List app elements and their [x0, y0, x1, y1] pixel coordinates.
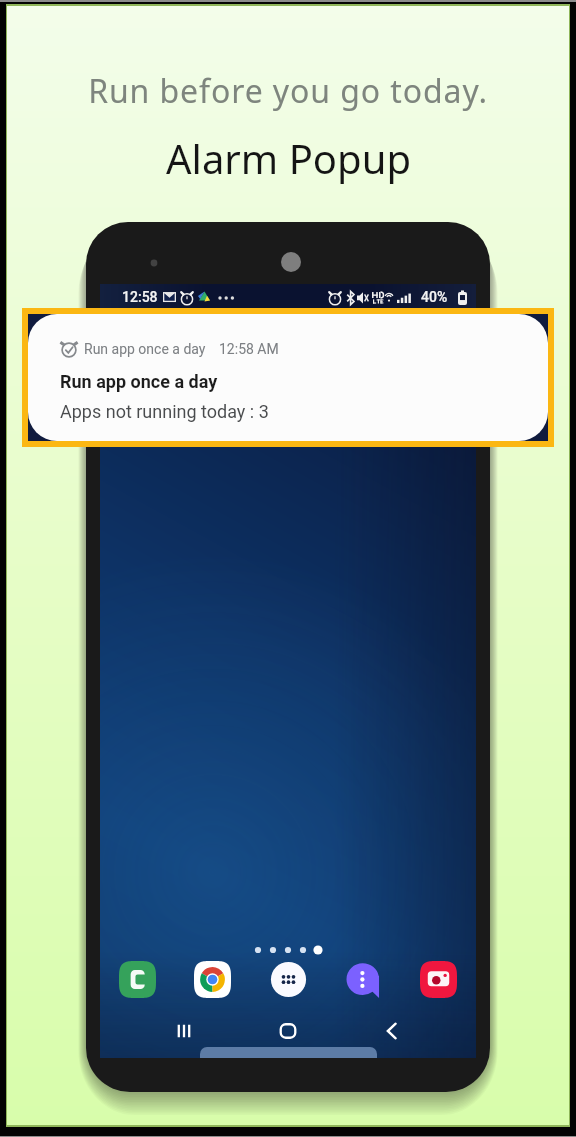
- button[interactable]: Home: [275, 1018, 301, 1044]
- staticText: 12:58: [122, 289, 158, 305]
- button[interactable]: Phone: [119, 961, 156, 998]
- staticText: 12:58 AM: [219, 341, 279, 357]
- button[interactable]: Back: [379, 1018, 405, 1044]
- button[interactable]: Camera: [420, 961, 457, 998]
- staticText: 40%: [421, 289, 448, 305]
- button[interactable]: Recents: [171, 1018, 197, 1044]
- staticText: Run before you go today.: [88, 69, 488, 113]
- button[interactable]: Chrome: [194, 961, 231, 998]
- staticText: Alarm Popup: [166, 131, 411, 185]
- staticText: Apps not running today : 3: [60, 401, 269, 422]
- button[interactable]: Messages: [345, 961, 382, 998]
- button[interactable]: Apps: [270, 961, 307, 998]
- staticText: Run app once a day: [60, 371, 218, 392]
- button[interactable]: Run app once a day: [28, 314, 548, 441]
- staticText: Run app once a day: [84, 341, 206, 357]
